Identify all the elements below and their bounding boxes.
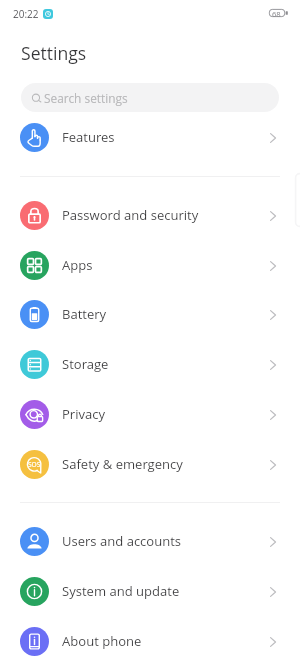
button[interactable]: About phone [0,616,300,666]
button[interactable]: Apps [0,240,300,290]
button[interactable]: System and update [0,566,300,616]
staticText: Storage [62,355,270,373]
staticText: Privacy [62,405,270,423]
button[interactable]: Privacy [0,389,300,439]
staticText: Search settings [44,90,128,106]
button[interactable]: Password and security [0,190,300,240]
staticText: Safety & emergency [62,455,270,473]
staticText: Features [62,128,270,146]
button[interactable]: Users and accounts [0,516,300,566]
button[interactable]: Search settings [21,83,279,112]
staticText: SOS [28,460,41,469]
button[interactable]: Battery [0,289,300,339]
staticText: 68 [272,9,281,19]
staticText: System and update [62,582,270,600]
staticText: Settings [21,41,87,65]
other: Alarm [43,9,53,19]
staticText: 20:22 [13,7,39,21]
staticText: Password and security [62,206,270,224]
staticText: Battery [62,305,270,323]
staticText: About phone [62,632,270,650]
staticText: Apps [62,256,270,274]
button[interactable]: SOS [0,439,300,489]
button[interactable]: Storage [0,339,300,389]
staticText: Users and accounts [62,532,270,550]
button[interactable]: Features [0,112,300,162]
